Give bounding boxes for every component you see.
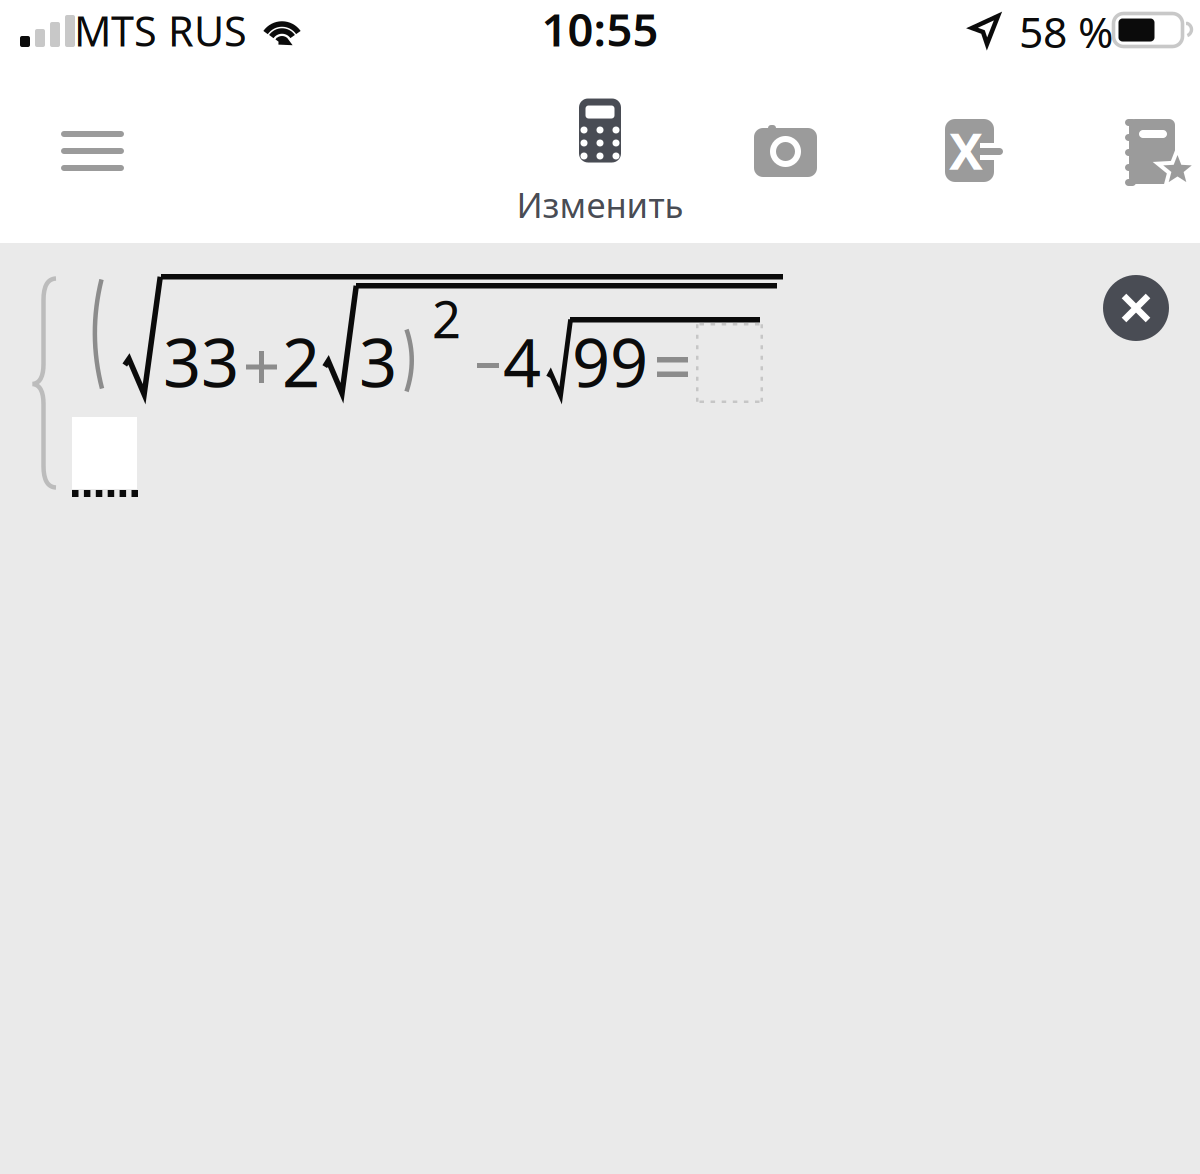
staticText: 99 — [572, 317, 648, 405]
staticText: Изменить — [516, 181, 683, 227]
button[interactable]: Close — [1103, 275, 1169, 341]
staticText: 58 % — [1019, 3, 1113, 60]
staticText: 3 — [359, 317, 397, 405]
button[interactable]: Favourites — [1125, 119, 1193, 185]
button[interactable]: Scan with camera — [754, 125, 817, 177]
staticText: MTS RUS — [74, 3, 247, 58]
staticText: 10:55 — [541, 0, 658, 59]
button[interactable]: Menu — [61, 131, 124, 171]
staticText: 33 — [163, 317, 239, 405]
staticText: 2 — [282, 317, 320, 405]
button[interactable]: Изменить — [490, 96, 710, 224]
staticText: X — [949, 116, 983, 184]
staticText: 4 — [503, 317, 541, 405]
button[interactable]: Solve for x — [945, 119, 1003, 182]
staticText: 2 — [432, 285, 461, 352]
